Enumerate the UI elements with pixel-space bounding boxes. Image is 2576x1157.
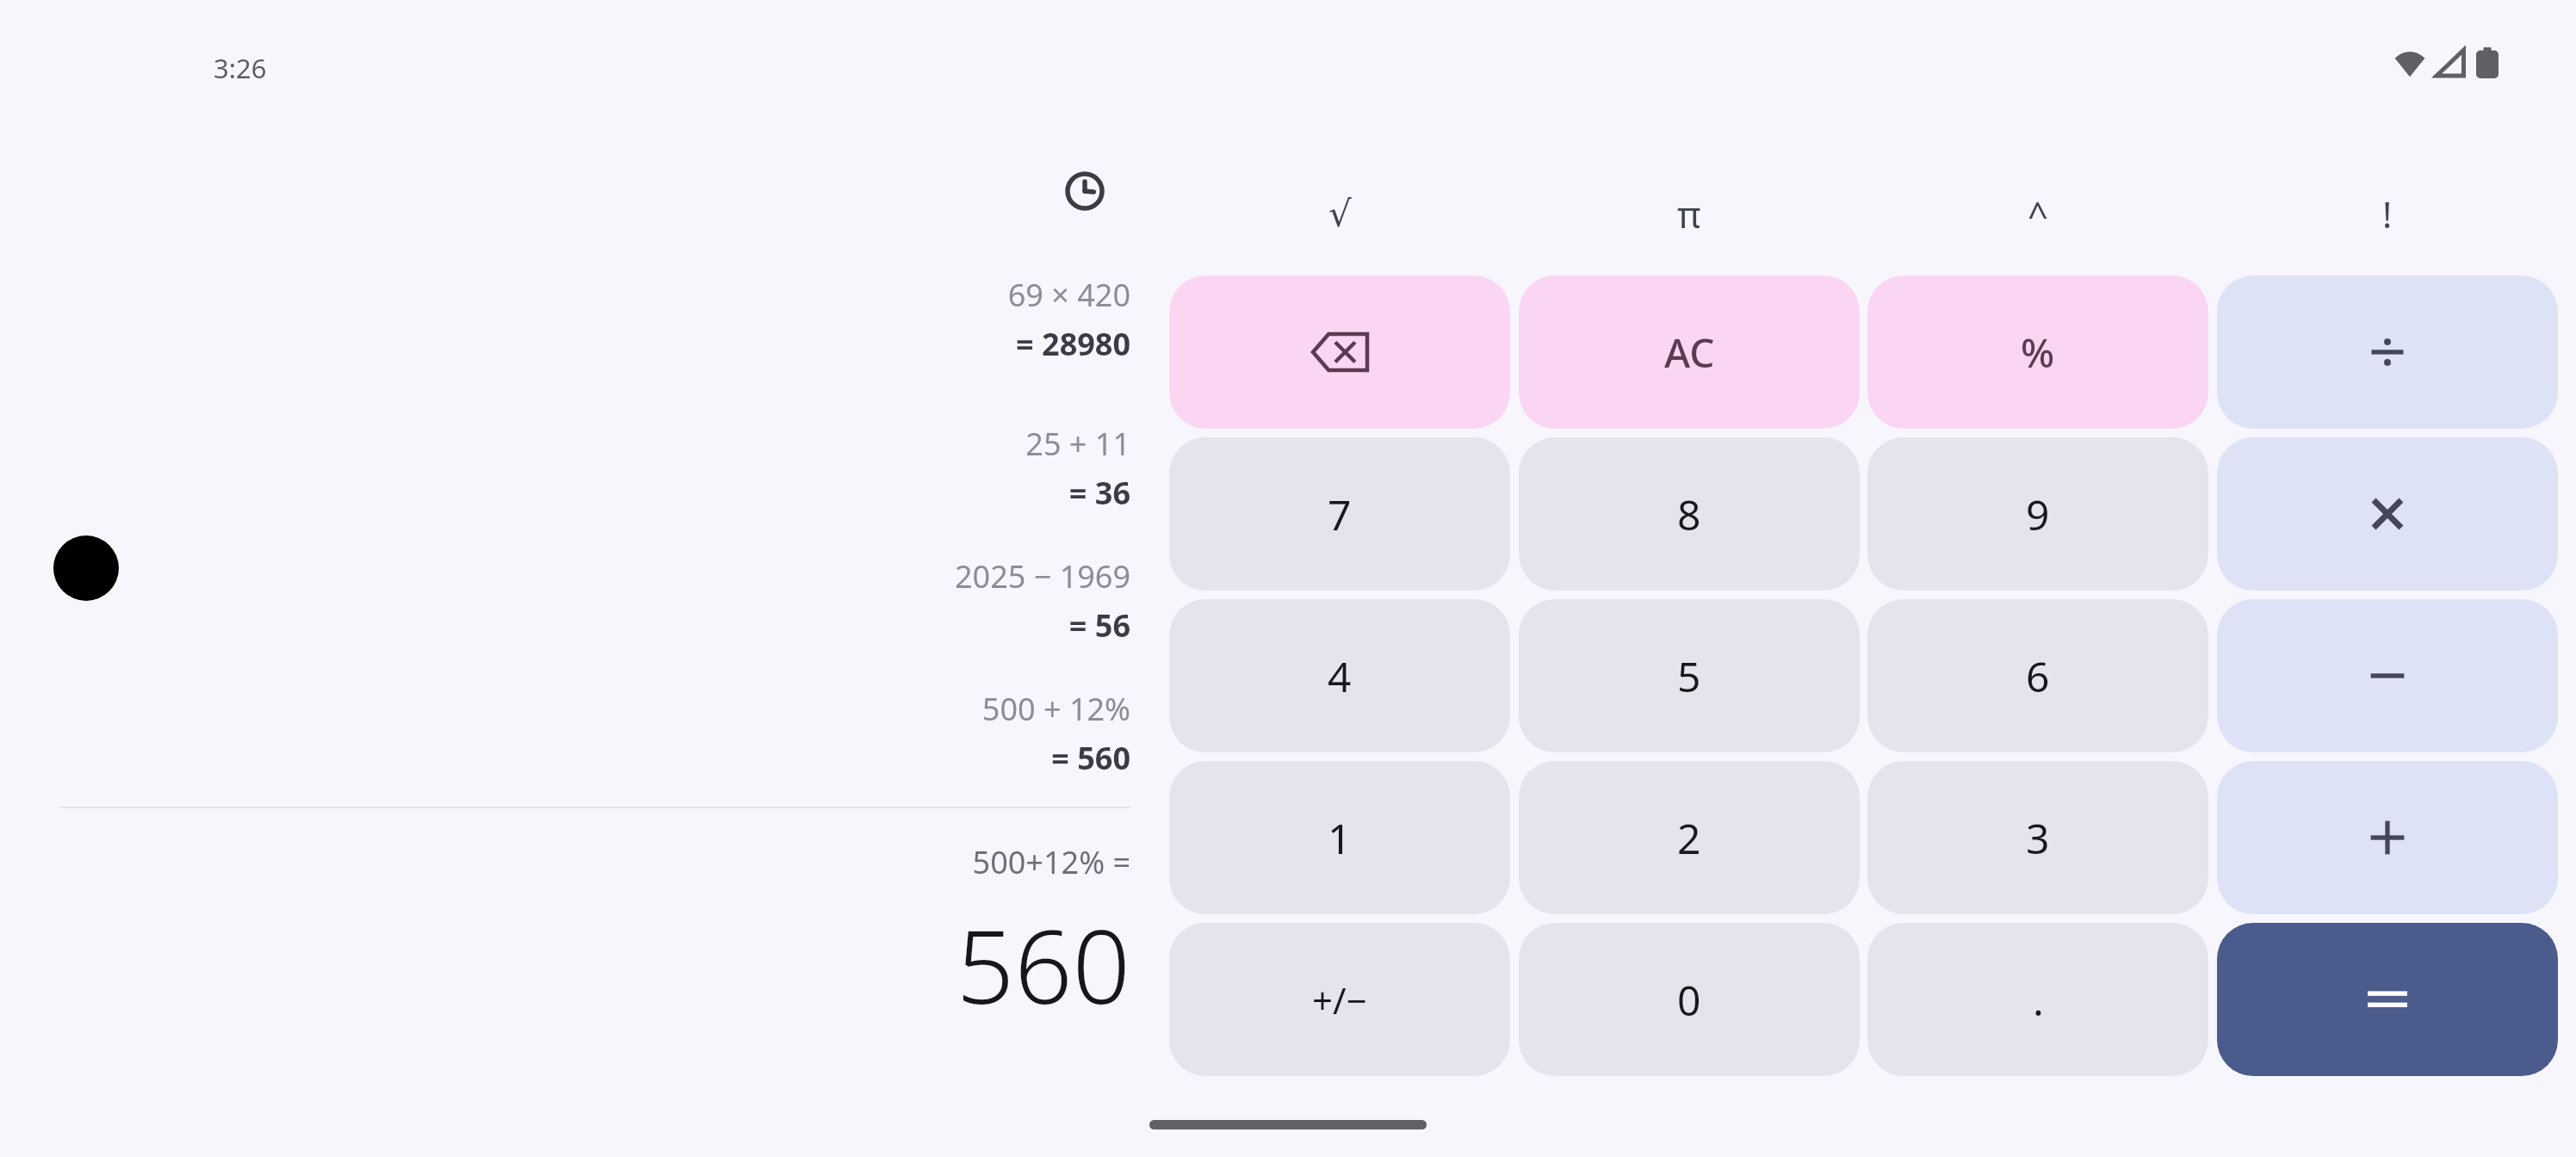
button[interactable]: 2025 − 1969 [442,555,1130,659]
staticText: 8 [1677,486,1701,542]
button[interactable]: . [1867,923,2208,1076]
staticText: 69 × 420 [442,274,1130,316]
staticText: 3 [2026,810,2050,866]
staticText: = 36 [442,472,1130,514]
staticText: 500+12% = [269,841,1130,883]
button[interactable]: % [1867,275,2208,429]
button[interactable]: Backspace [1169,275,1510,429]
button[interactable]: ! [2217,169,2558,258]
button[interactable]: 25 + 11 [442,423,1130,526]
button[interactable]: √ [1169,169,1510,258]
button[interactable]: 5 [1519,599,1860,752]
staticText: 25 + 11 [442,423,1130,465]
button[interactable]: 500 + 12% [442,688,1130,791]
staticText: 5 [1677,648,1701,704]
button[interactable]: 4 [1169,599,1510,752]
staticText: 6 [2026,648,2050,704]
staticText: . [2033,972,2044,1028]
button[interactable]: 6 [1867,599,2208,752]
staticText: 4 [1328,648,1352,704]
staticText: ^ [2028,189,2049,238]
button[interactable]: Divide [2217,275,2558,429]
button[interactable]: 3 [1867,761,2208,914]
button[interactable]: 7 [1169,437,1510,591]
button[interactable]: +/− [1169,923,1510,1076]
staticText: ! [2382,189,2393,238]
button[interactable]: π [1519,169,1860,258]
staticText: +/− [1312,975,1367,1024]
staticText: √ [1328,193,1352,235]
staticText: 2 [1677,810,1701,866]
staticText: AC [1664,325,1715,380]
staticText: 1 [1328,810,1352,866]
staticText: % [2021,325,2055,380]
staticText: 9 [2026,486,2050,542]
staticText: = 560 [442,737,1130,779]
button[interactable]: 2 [1519,761,1860,914]
staticText: 2025 − 1969 [442,555,1130,597]
button[interactable]: 69 × 420 [442,274,1130,377]
staticText: = 28980 [442,323,1130,365]
staticText: = 56 [442,604,1130,647]
button[interactable]: Plus [2217,761,2558,914]
staticText: 560 [269,895,1130,1034]
button[interactable]: ^ [1867,169,2208,258]
button[interactable]: Minus [2217,599,2558,752]
button[interactable]: 9 [1867,437,2208,591]
button[interactable]: History [1062,169,1107,213]
button[interactable]: 1 [1169,761,1510,914]
button[interactable]: 8 [1519,437,1860,591]
button[interactable]: AC [1519,275,1860,429]
staticText: 3:26 [214,50,267,86]
staticText: 500 + 12% [442,688,1130,730]
staticText: 0 [1677,972,1701,1028]
staticText: 7 [1328,486,1352,542]
staticText: π [1677,189,1701,238]
button[interactable]: Multiply [2217,437,2558,591]
button[interactable]: 0 [1519,923,1860,1076]
button[interactable]: Equals [2217,923,2558,1076]
